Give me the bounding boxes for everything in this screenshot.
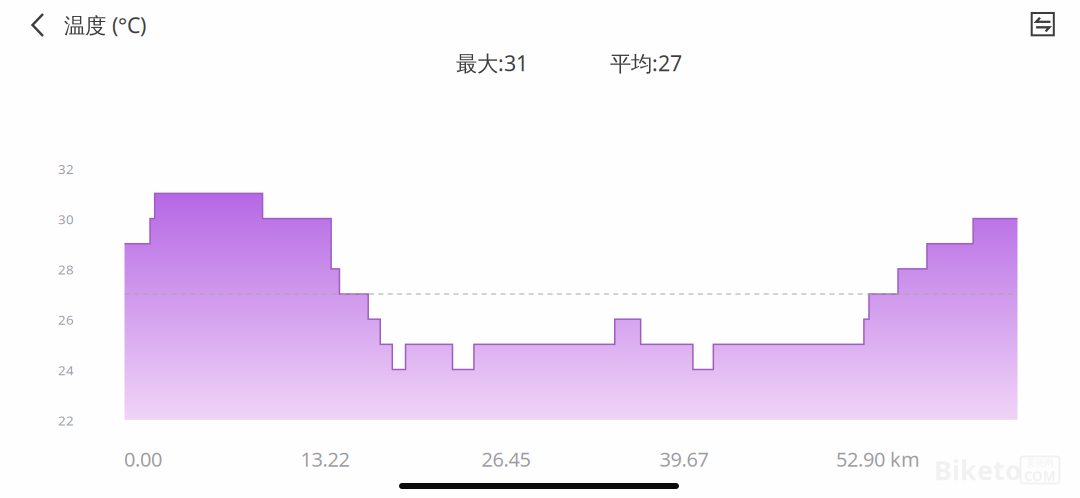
staticText: 52.90 km <box>836 446 920 472</box>
staticText: 32 <box>58 160 74 178</box>
staticText: 13.22 <box>300 446 349 472</box>
staticText: 26 <box>58 311 74 328</box>
staticText: 22 <box>58 411 74 429</box>
staticText: COM <box>1024 467 1056 485</box>
staticText: 平均:27 <box>610 49 682 77</box>
staticText: 最大:31 <box>456 49 528 77</box>
button[interactable]: Switch temperature unit <box>1021 2 1065 46</box>
staticText: 26.45 <box>481 446 530 472</box>
staticText: 30 <box>58 210 74 228</box>
button[interactable]: Back <box>16 3 60 47</box>
staticText: 24 <box>58 361 74 379</box>
staticText: 39.67 <box>659 446 708 472</box>
staticText: Biketo <box>934 452 1022 488</box>
staticText: 美骑网 <box>1026 457 1053 469</box>
staticText: 温度 (°C) <box>64 11 146 39</box>
staticText: 28 <box>58 260 74 278</box>
staticText: 0.00 <box>124 446 162 472</box>
